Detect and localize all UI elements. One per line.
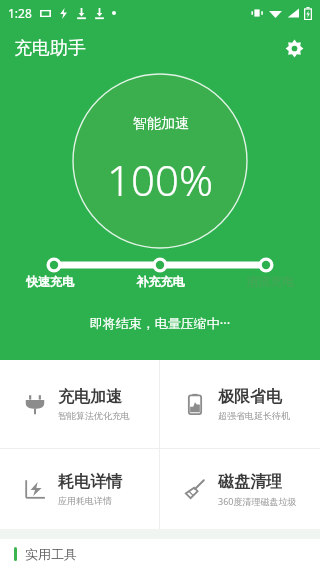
button[interactable]: Settings	[279, 33, 310, 64]
staticText: 1:28	[8, 5, 32, 21]
staticText: 智能算法优化充电	[58, 410, 130, 421]
button[interactable]: 耗电详情	[0, 449, 159, 529]
staticText: 耗电详情	[58, 472, 122, 492]
button[interactable]: 充电加速	[0, 360, 159, 448]
button[interactable]: 磁盘清理	[160, 449, 320, 529]
staticText: 充电加速	[58, 387, 122, 407]
staticText: 涓流充电	[205, 274, 294, 289]
staticText: 100%	[107, 151, 214, 208]
staticText: 磁盘清理	[218, 472, 282, 492]
staticText: 超强省电延长待机	[218, 410, 290, 421]
button[interactable]: 极限省电	[160, 360, 320, 448]
staticText: 极限省电	[218, 387, 282, 407]
staticText: 360度清理磁盘垃圾	[218, 495, 297, 507]
staticText: 快速充电	[26, 274, 116, 289]
staticText: 充电助手	[14, 37, 86, 60]
staticText: 即将结束，电量压缩中···	[0, 314, 320, 332]
staticText: 智能加速	[133, 115, 189, 133]
staticText: 应用耗电详情	[58, 495, 112, 506]
staticText: 实用工具	[25, 546, 77, 562]
staticText: 补充充电	[116, 274, 205, 289]
